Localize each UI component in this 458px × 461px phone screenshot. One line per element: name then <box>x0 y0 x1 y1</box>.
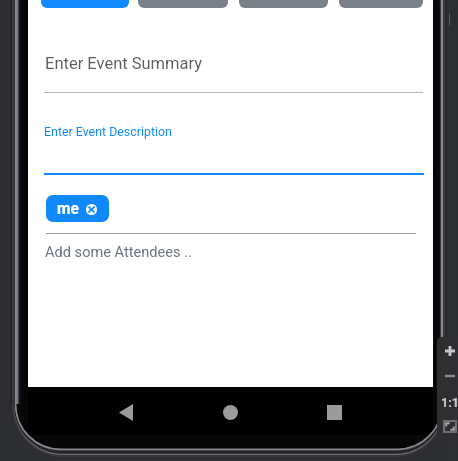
button[interactable]: Home <box>212 394 249 431</box>
staticText: 1:1 <box>441 395 458 410</box>
button[interactable]: Filter chip <box>339 0 423 8</box>
button[interactable]: Filter chip <box>239 0 328 8</box>
button[interactable]: Filter chip <box>41 0 129 8</box>
staticText: Add some Attendees .. <box>45 243 192 260</box>
button[interactable]: Back <box>107 394 144 431</box>
button[interactable]: Zoom out <box>440 366 458 386</box>
button[interactable]: 1:1 <box>440 392 458 412</box>
button[interactable]: Filter chip <box>138 0 228 8</box>
button[interactable]: me <box>46 195 109 222</box>
button[interactable]: Fit to screen <box>440 417 458 435</box>
staticText: me <box>57 200 79 218</box>
button[interactable]: Zoom in <box>440 341 458 361</box>
other: Remove me <box>86 204 97 215</box>
staticText: Enter Event Description <box>44 124 172 139</box>
staticText: Enter Event Summary <box>45 54 203 73</box>
button[interactable]: Recent apps <box>316 394 353 431</box>
